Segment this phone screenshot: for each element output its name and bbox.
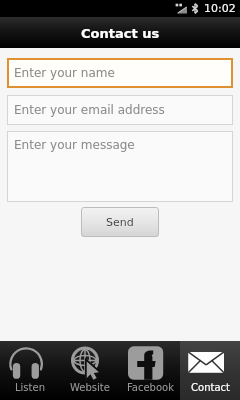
staticText: Facebook [127, 382, 174, 394]
staticText: 10:02 [204, 2, 236, 15]
button[interactable]: Listen [0, 341, 60, 400]
staticText: Website [70, 382, 110, 394]
staticText: Enter your message [14, 138, 135, 152]
button[interactable]: Enter your email address [7, 95, 233, 125]
staticText: Enter your email address [14, 103, 165, 117]
button[interactable]: Facebook [120, 341, 180, 400]
button[interactable]: Contact [180, 341, 240, 400]
staticText: Listen [15, 382, 45, 394]
staticText: Contact us [81, 26, 160, 41]
button[interactable]: Website [60, 341, 120, 400]
staticText: Contact [191, 382, 230, 394]
button[interactable]: Send [81, 207, 159, 237]
staticText: Enter your name [14, 66, 115, 80]
staticText: Send [106, 216, 134, 229]
button[interactable]: Enter your name [7, 58, 233, 88]
button[interactable]: Enter your message [7, 131, 233, 202]
